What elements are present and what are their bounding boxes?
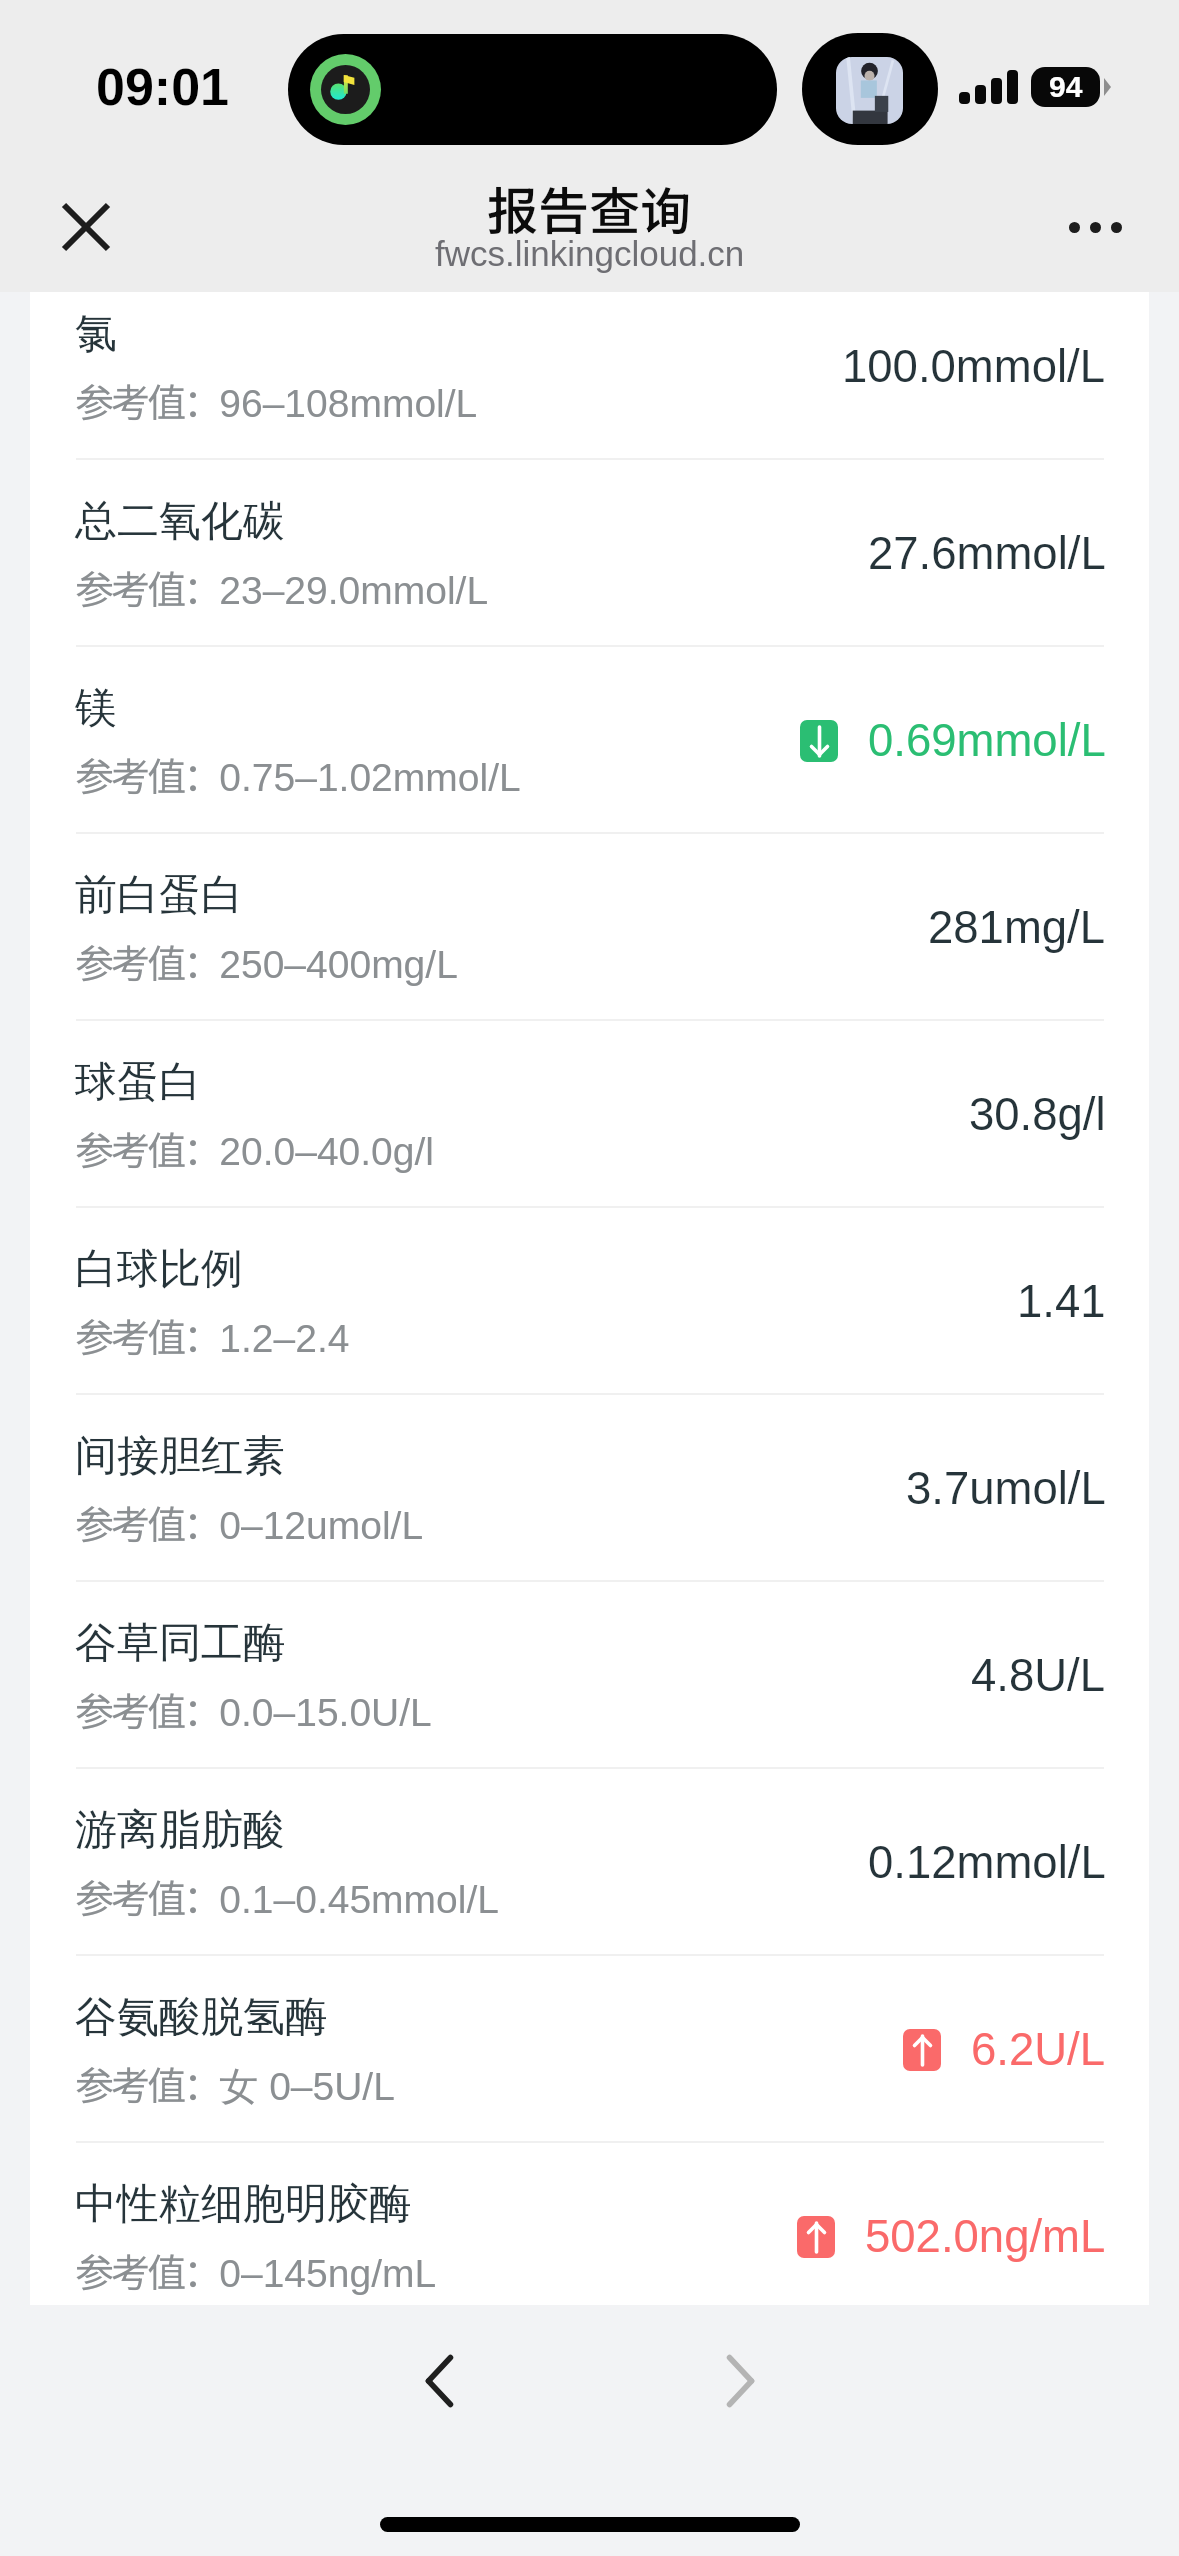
staticText: 1.41 [1017, 1276, 1106, 1327]
staticText: 参考值：0.75–1.02mmol/L [75, 746, 521, 802]
staticText: 09:01 [96, 58, 229, 116]
staticText: 100.0mmol/L [842, 341, 1106, 392]
staticText: 总二氧化碳 [75, 495, 285, 548]
staticText: 前白蛋白 [75, 869, 243, 922]
button[interactable]: 间接胆红素 [30, 1395, 1149, 1582]
button[interactable]: 镁 [30, 647, 1149, 834]
staticText: 参考值：23–29.0mmol/L [75, 559, 489, 615]
staticText: 谷草同工酶 [75, 1617, 285, 1670]
button[interactable]: Forward [691, 2331, 789, 2431]
staticText: 参考值：250–400mg/L [75, 933, 458, 989]
staticText: 94 [1049, 70, 1083, 104]
button[interactable]: Back [390, 2331, 488, 2431]
staticText: 中性粒细胞明胶酶 [75, 2178, 411, 2231]
staticText: 参考值：女 0–5U/L [75, 2055, 395, 2112]
button[interactable]: 前白蛋白 [30, 834, 1149, 1021]
staticText: 参考值：96–108mmol/L [75, 372, 478, 428]
staticText: 参考值：0.0–15.0U/L [75, 1681, 432, 1737]
staticText: 报告查询 [487, 171, 692, 245]
staticText: 27.6mmol/L [868, 528, 1106, 579]
button[interactable]: 游离脂肪酸 [30, 1769, 1149, 1956]
staticText: 502.0ng/mL [865, 2211, 1106, 2262]
staticText: 参考值：0–12umol/L [75, 1494, 424, 1550]
staticText: 4.8U/L [971, 1650, 1106, 1701]
staticText: 6.2U/L [971, 2024, 1106, 2075]
button[interactable]: 氯 [30, 292, 1149, 460]
staticText: 谷氨酸脱氢酶 [75, 1991, 327, 2044]
staticText: 30.8g/l [969, 1089, 1106, 1140]
button[interactable]: More options [1039, 181, 1151, 273]
button[interactable]: 白球比例 [30, 1208, 1149, 1395]
staticText: 3.7umol/L [906, 1463, 1106, 1514]
button[interactable]: 总二氧化碳 [30, 460, 1149, 647]
staticText: 间接胆红素 [75, 1430, 285, 1483]
staticText: 281mg/L [928, 902, 1106, 953]
staticText: 镁 [75, 682, 117, 735]
button[interactable]: 谷氨酸脱氢酶 [30, 1956, 1149, 2143]
staticText: 参考值：0.1–0.45mmol/L [75, 1868, 499, 1924]
staticText: 0.69mmol/L [868, 715, 1106, 766]
staticText: 参考值：1.2–2.4 [75, 1307, 350, 1363]
button[interactable]: Close [40, 181, 132, 273]
staticText: fwcs.linkingcloud.cn [435, 234, 745, 273]
button[interactable]: 中性粒细胞明胶酶 [30, 2143, 1149, 2305]
staticText: 白球比例 [75, 1243, 243, 1296]
staticText: 氯 [75, 308, 117, 361]
staticText: 0.12mmol/L [868, 1837, 1106, 1888]
staticText: 球蛋白 [75, 1056, 201, 1109]
button[interactable]: 谷草同工酶 [30, 1582, 1149, 1769]
staticText: 游离脂肪酸 [75, 1804, 285, 1857]
staticText: 参考值：20.0–40.0g/l [75, 1120, 434, 1176]
button[interactable]: 球蛋白 [30, 1021, 1149, 1208]
staticText: 参考值：0–145ng/mL [75, 2242, 437, 2298]
